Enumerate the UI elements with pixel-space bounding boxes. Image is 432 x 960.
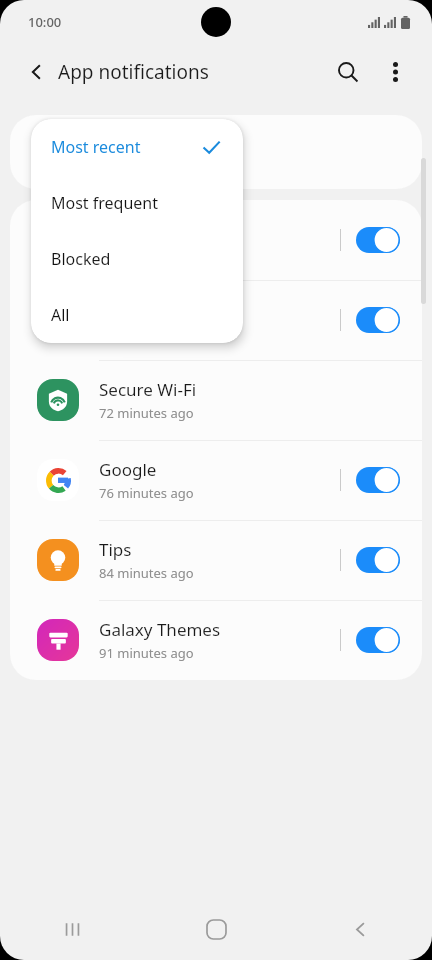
button[interactable]: Notifications on: [356, 547, 400, 573]
staticText: Google: [99, 458, 157, 481]
button[interactable]: Most recent: [31, 119, 243, 175]
button[interactable]: Most frequent: [31, 175, 243, 231]
button[interactable]: [10, 115, 422, 189]
staticText: Most recent: [51, 136, 141, 158]
button[interactable]: Galaxy Themes: [10, 600, 422, 680]
staticText: Most frequent: [51, 192, 159, 214]
button[interactable]: Back: [288, 898, 432, 960]
staticText: App notifications: [58, 59, 209, 85]
staticText: 84 minutes ago: [99, 564, 194, 582]
button[interactable]: All: [31, 287, 243, 343]
button[interactable]: Blocked: [31, 231, 243, 287]
staticText: Tips: [99, 538, 132, 561]
staticText: All: [51, 304, 70, 326]
button[interactable]: Recents: [0, 898, 144, 960]
staticText: 76 minutes ago: [99, 484, 194, 502]
button[interactable]: Notifications on: [356, 467, 400, 493]
button[interactable]: Notifications on: [356, 227, 400, 253]
staticText: 91 minutes ago: [99, 644, 194, 662]
button[interactable]: Notifications on: [356, 307, 400, 333]
button[interactable]: Notifications on: [356, 627, 400, 653]
button[interactable]: Back: [18, 53, 56, 91]
button[interactable]: More options: [374, 51, 416, 93]
button[interactable]: Google: [10, 440, 422, 520]
button[interactable]: Home: [144, 898, 288, 960]
button[interactable]: Secure Wi-Fi: [10, 360, 422, 440]
staticText: Galaxy Themes: [99, 618, 221, 641]
staticText: 72 minutes ago: [99, 404, 194, 422]
button[interactable]: Notifications on: [10, 280, 422, 360]
button[interactable]: Search: [326, 50, 370, 94]
button[interactable]: Tips: [10, 520, 422, 600]
staticText: Secure Wi-Fi: [99, 378, 197, 401]
button[interactable]: Notifications on: [10, 200, 422, 280]
staticText: 10:00: [28, 13, 62, 31]
staticText: Blocked: [51, 248, 111, 270]
